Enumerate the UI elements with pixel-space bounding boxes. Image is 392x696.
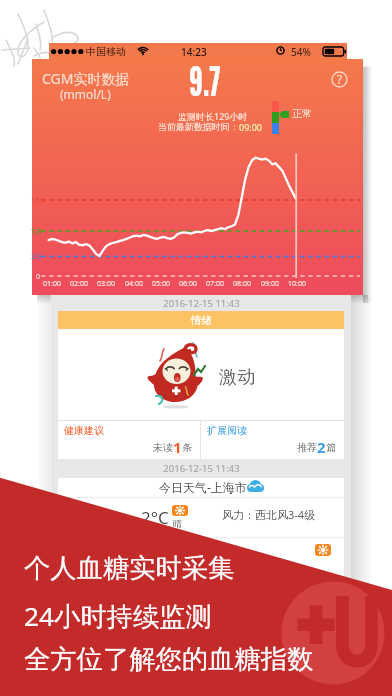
staticText: 09:00 [259,279,281,289]
staticText: 2 [317,437,326,457]
staticText: 02:00 [68,279,90,289]
staticText: 04:00 [123,279,145,289]
staticText: (mmol/L) [60,86,111,102]
staticText: CGM实时数据 [42,69,130,88]
staticText: 06:00 [177,279,199,289]
staticText: 情绪 [191,314,212,327]
staticText: 今日天气-上海市 [159,479,247,495]
staticText: 2°C [141,506,169,529]
staticText: 当前最新数据时间： [158,121,239,132]
staticText: 篇 [326,441,336,454]
button[interactable]: 健康建议 [58,421,200,459]
staticText: 07:00 [204,279,226,289]
staticText: 全方位了解您的血糖指数 [24,643,314,676]
staticText: 05:00 [150,279,172,289]
staticText: 3.9 [31,252,41,262]
staticText: 扩展阅读 [207,424,247,437]
staticText: 10:00 [286,279,308,289]
staticText: 11.1 [31,196,45,206]
staticText: 14:23 [181,45,207,59]
staticText: 推荐 [297,441,317,454]
staticText: 09:00 [239,121,263,133]
staticText: 条 [182,441,192,454]
staticText: 健康建议 [64,424,104,437]
staticText: 中国移动 [86,45,126,58]
staticText: 2016-12-15 11:43 [163,297,240,310]
staticText: 01:00 [41,279,63,289]
staticText: 2016-12-15 11:43 [163,462,240,475]
staticText: 7.8 [31,227,41,237]
staticText: 晴 [173,518,182,529]
button[interactable]: 扩展阅读 [201,421,344,459]
staticText: 54% [291,45,311,59]
staticText: 未读 [153,441,173,454]
staticText: 03:00 [95,279,117,289]
staticText: 正常 [292,107,312,120]
staticText: 1 [173,437,182,457]
staticText: 个人血糖实时采集 [24,552,235,585]
staticText: 风力：西北风3-4级 [222,507,316,522]
button[interactable]: Help [331,71,348,88]
staticText: 9.7 [189,51,221,107]
staticText: ? [337,71,343,87]
staticText: 08:00 [231,279,253,289]
staticText: 0 [36,272,41,282]
staticText: 监测时长129小时 [178,110,248,122]
staticText: 24小时持续监测 [24,598,212,634]
staticText: 激动 [219,366,255,389]
